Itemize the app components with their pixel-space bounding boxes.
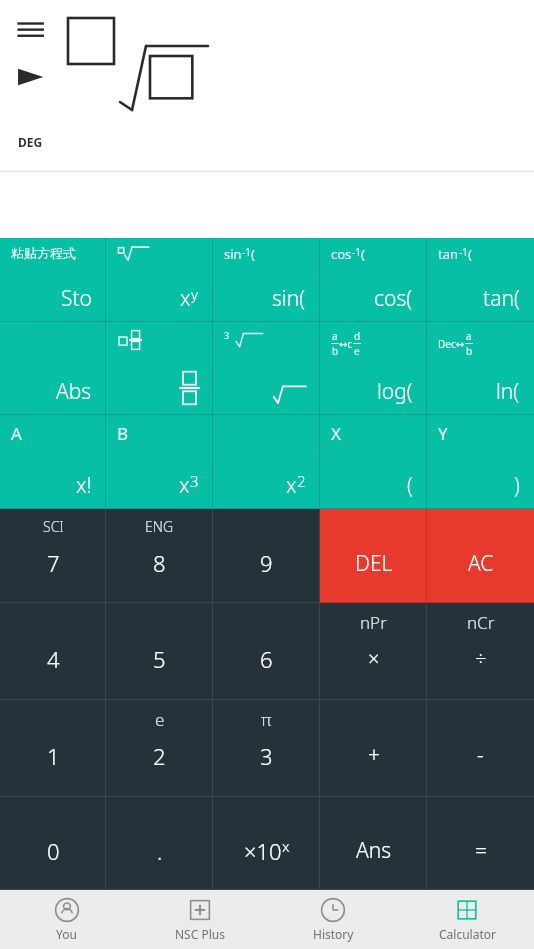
staticText: SCI: [43, 517, 64, 536]
staticText: 2: [297, 471, 306, 491]
staticText: B: [117, 422, 129, 445]
staticText: a: [466, 329, 472, 343]
staticText: 5: [153, 644, 166, 674]
staticText: +: [368, 741, 380, 770]
button[interactable]: 3: [213, 322, 320, 415]
staticText: 0: [47, 836, 60, 866]
staticText: x: [286, 471, 297, 500]
staticText: -1: [352, 245, 361, 259]
staticText: b: [332, 344, 339, 358]
button[interactable]: nCr: [427, 603, 534, 700]
staticText: Y: [438, 422, 448, 445]
button[interactable]: 9: [213, 509, 320, 603]
staticText: e: [354, 344, 360, 358]
staticText: x: [180, 284, 191, 313]
staticText: Ans: [356, 836, 392, 865]
staticText: DEG: [18, 134, 43, 150]
staticText: -: [477, 741, 484, 770]
button[interactable]: 粘贴方程式: [0, 238, 106, 322]
staticText: tan(: [483, 284, 520, 313]
button[interactable]: You: [0, 890, 133, 949]
staticText: x: [179, 471, 190, 500]
staticText: ln(: [496, 377, 520, 406]
button[interactable]: =: [427, 797, 534, 890]
button[interactable]: tan: [427, 238, 534, 322]
staticText: NSC Plus: [175, 926, 225, 942]
staticText: 粘贴方程式: [11, 245, 76, 261]
staticText: (: [468, 245, 472, 263]
staticText: You: [56, 926, 77, 942]
button[interactable]: X: [320, 415, 427, 509]
staticText: cos: [331, 245, 352, 263]
staticText: A: [11, 422, 22, 445]
staticText: (: [361, 245, 365, 263]
staticText: ): [514, 471, 520, 500]
staticText: a: [332, 329, 338, 343]
staticText: X: [331, 422, 341, 445]
button[interactable]: x: [106, 238, 213, 322]
staticText: Dec↔: [438, 337, 465, 351]
staticText: nCr: [467, 611, 495, 634]
staticText: e: [155, 708, 165, 731]
button[interactable]: -: [427, 700, 534, 797]
staticText: 2: [153, 741, 166, 771]
button[interactable]: sin: [213, 238, 320, 322]
staticText: 3: [224, 329, 230, 341]
button[interactable]: AC: [427, 509, 534, 603]
staticText: DEL: [355, 549, 393, 578]
button[interactable]: .: [106, 797, 213, 890]
button[interactable]: 0: [0, 797, 106, 890]
staticText: ÷: [475, 645, 487, 672]
staticText: ENG: [145, 517, 174, 536]
button[interactable]: A: [0, 415, 106, 509]
staticText: 1: [47, 741, 60, 771]
button[interactable]: +: [320, 700, 427, 797]
button[interactable]: π: [213, 700, 320, 797]
staticText: -1: [459, 245, 468, 259]
button[interactable]: 6: [213, 603, 320, 700]
button[interactable]: [106, 322, 213, 415]
button[interactable]: 4: [0, 603, 106, 700]
staticText: sin(: [272, 284, 306, 313]
button[interactable]: a: [320, 322, 427, 415]
staticText: 7: [47, 548, 60, 578]
button[interactable]: ENG: [106, 509, 213, 603]
button[interactable]: cos: [320, 238, 427, 322]
staticText: Sto: [61, 284, 92, 313]
button[interactable]: Calculator: [400, 890, 534, 949]
staticText: ×10: [244, 836, 282, 866]
staticText: (: [251, 245, 255, 263]
button[interactable]: Menu: [14, 14, 48, 48]
button[interactable]: SCI: [0, 509, 106, 603]
staticText: Calculator: [439, 926, 496, 942]
staticText: nPr: [360, 611, 387, 634]
staticText: 8: [153, 548, 166, 578]
staticText: Abs: [56, 377, 92, 406]
button[interactable]: Dec↔: [427, 322, 534, 415]
button[interactable]: ×10: [213, 797, 320, 890]
staticText: AC: [468, 549, 494, 578]
button[interactable]: Abs: [0, 322, 106, 415]
button[interactable]: x: [213, 415, 320, 509]
staticText: 4: [47, 644, 60, 674]
button[interactable]: Ans: [320, 797, 427, 890]
staticText: x: [282, 836, 290, 856]
staticText: 3: [190, 471, 199, 491]
button[interactable]: NSC Plus: [133, 890, 266, 949]
button[interactable]: History: [266, 890, 400, 949]
staticText: cos(: [374, 284, 413, 313]
button[interactable]: Y: [427, 415, 534, 509]
button[interactable]: 5: [106, 603, 213, 700]
staticText: b: [466, 344, 473, 358]
button[interactable]: Evaluate: [14, 60, 48, 94]
staticText: log(: [377, 377, 413, 406]
button[interactable]: B: [106, 415, 213, 509]
staticText: y: [191, 284, 199, 304]
button[interactable]: 1: [0, 700, 106, 797]
staticText: History: [313, 926, 354, 942]
button[interactable]: nPr: [320, 603, 427, 700]
button[interactable]: DEL: [320, 509, 427, 603]
staticText: ×: [368, 645, 380, 672]
button[interactable]: e: [106, 700, 213, 797]
staticText: ↔c: [339, 337, 353, 351]
